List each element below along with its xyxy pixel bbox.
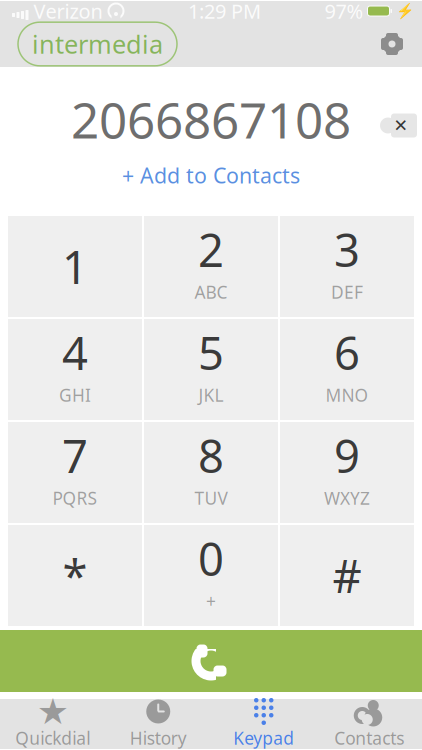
button[interactable]: 7	[8, 422, 142, 523]
staticText: TUV	[194, 487, 227, 510]
staticText: + Add to Contacts	[122, 161, 300, 189]
button[interactable]: 0	[144, 525, 278, 626]
staticText: DEF	[331, 281, 363, 304]
button[interactable]: 4	[8, 319, 142, 420]
button[interactable]: 5	[144, 319, 278, 420]
button[interactable]: 2	[144, 216, 278, 317]
staticText: MNO	[325, 384, 368, 407]
staticText: 97%	[324, 0, 363, 24]
button[interactable]: History	[105, 699, 211, 749]
staticText: 5	[198, 322, 224, 383]
staticText: *	[62, 545, 87, 606]
staticText: 9	[334, 425, 360, 486]
button[interactable]: *	[8, 525, 142, 626]
staticText: 2	[198, 219, 224, 280]
button[interactable]: intermedia	[18, 22, 177, 66]
staticText: History	[130, 726, 187, 749]
staticText: 0	[198, 528, 224, 589]
staticText: 3	[334, 219, 360, 280]
button[interactable]: 8	[144, 422, 278, 523]
staticText: GHI	[59, 384, 91, 407]
button[interactable]: ★	[0, 699, 105, 749]
button[interactable]: 1	[8, 216, 142, 317]
staticText: 1:29 PM	[188, 0, 261, 24]
button[interactable]: Keypad	[211, 699, 316, 749]
button[interactable]: Contacts	[316, 699, 422, 749]
staticText: Contacts	[334, 726, 404, 749]
button[interactable]: Delete	[370, 103, 422, 147]
staticText: 1	[62, 236, 88, 297]
button[interactable]: 6	[280, 319, 414, 420]
staticText: 2066867108	[71, 87, 351, 152]
staticText: ABC	[194, 281, 227, 304]
staticText: 4	[62, 322, 88, 383]
button[interactable]: 3	[280, 216, 414, 317]
staticText: ✕	[393, 116, 408, 135]
staticText: JKL	[198, 384, 223, 407]
staticText: WXYZ	[324, 487, 370, 510]
staticText: +	[206, 590, 216, 613]
staticText: intermedia	[32, 27, 163, 61]
staticText: 7	[62, 425, 88, 486]
staticText: Verizon	[33, 0, 102, 24]
button[interactable]: Settings	[370, 22, 414, 66]
staticText: Keypad	[233, 726, 294, 749]
staticText: PQRS	[52, 487, 97, 510]
staticText: ⚡	[396, 3, 414, 19]
staticText: Quickdial	[15, 726, 90, 749]
button[interactable]: #	[280, 525, 414, 626]
staticText: 6	[334, 322, 360, 383]
button[interactable]: 9	[280, 422, 414, 523]
staticText: ★	[37, 691, 69, 732]
button[interactable]: + Add to Contacts	[112, 158, 310, 192]
staticText: 8	[198, 425, 224, 486]
button[interactable]: Call	[0, 630, 422, 692]
staticText: #	[332, 545, 361, 606]
